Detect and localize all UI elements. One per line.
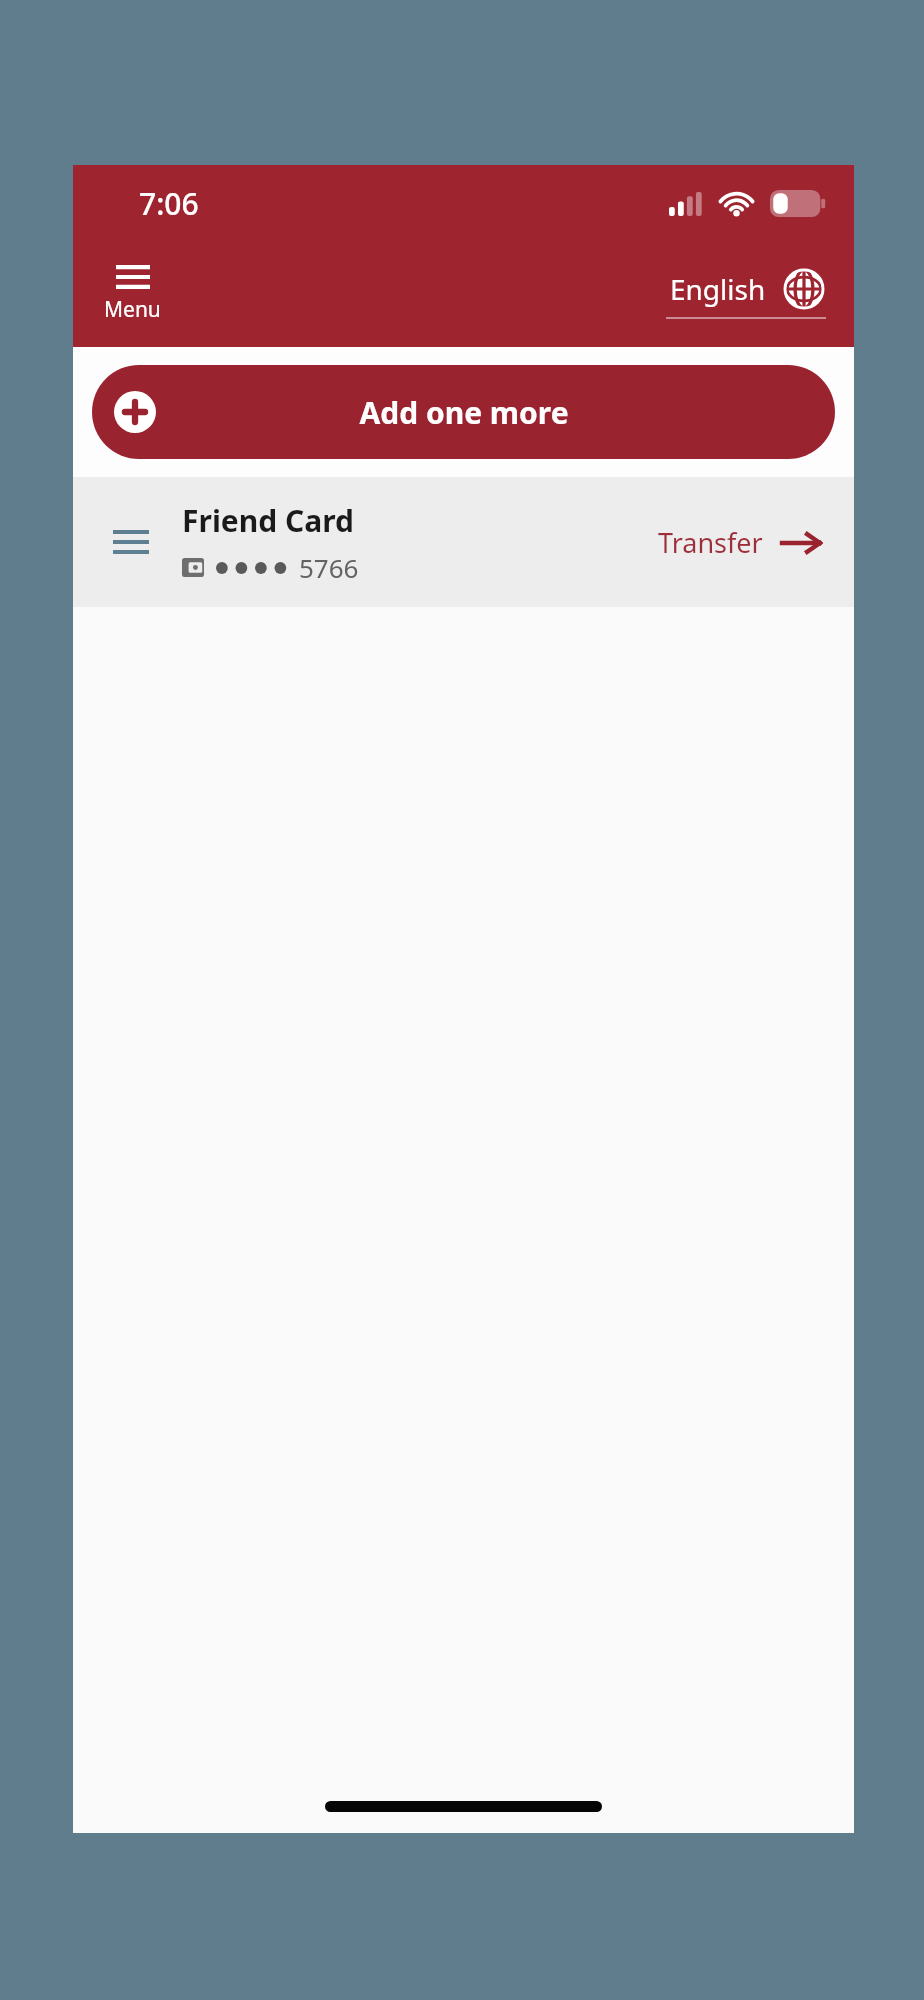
staticText: 5766 xyxy=(299,550,359,585)
staticText: 7:06 xyxy=(139,183,199,224)
button[interactable]: Add one more xyxy=(92,365,835,459)
staticText: English xyxy=(670,270,766,308)
button[interactable]: English xyxy=(666,270,826,319)
button[interactable]: Menu xyxy=(96,261,169,328)
staticText: Add one more xyxy=(359,392,569,433)
staticText: Transfer xyxy=(658,524,763,561)
staticText: Friend Card xyxy=(182,500,355,541)
other: Reorder xyxy=(113,530,149,554)
staticText: Menu xyxy=(104,295,161,324)
button[interactable]: Transfer xyxy=(652,516,826,569)
button[interactable]: Reorder xyxy=(73,477,854,607)
